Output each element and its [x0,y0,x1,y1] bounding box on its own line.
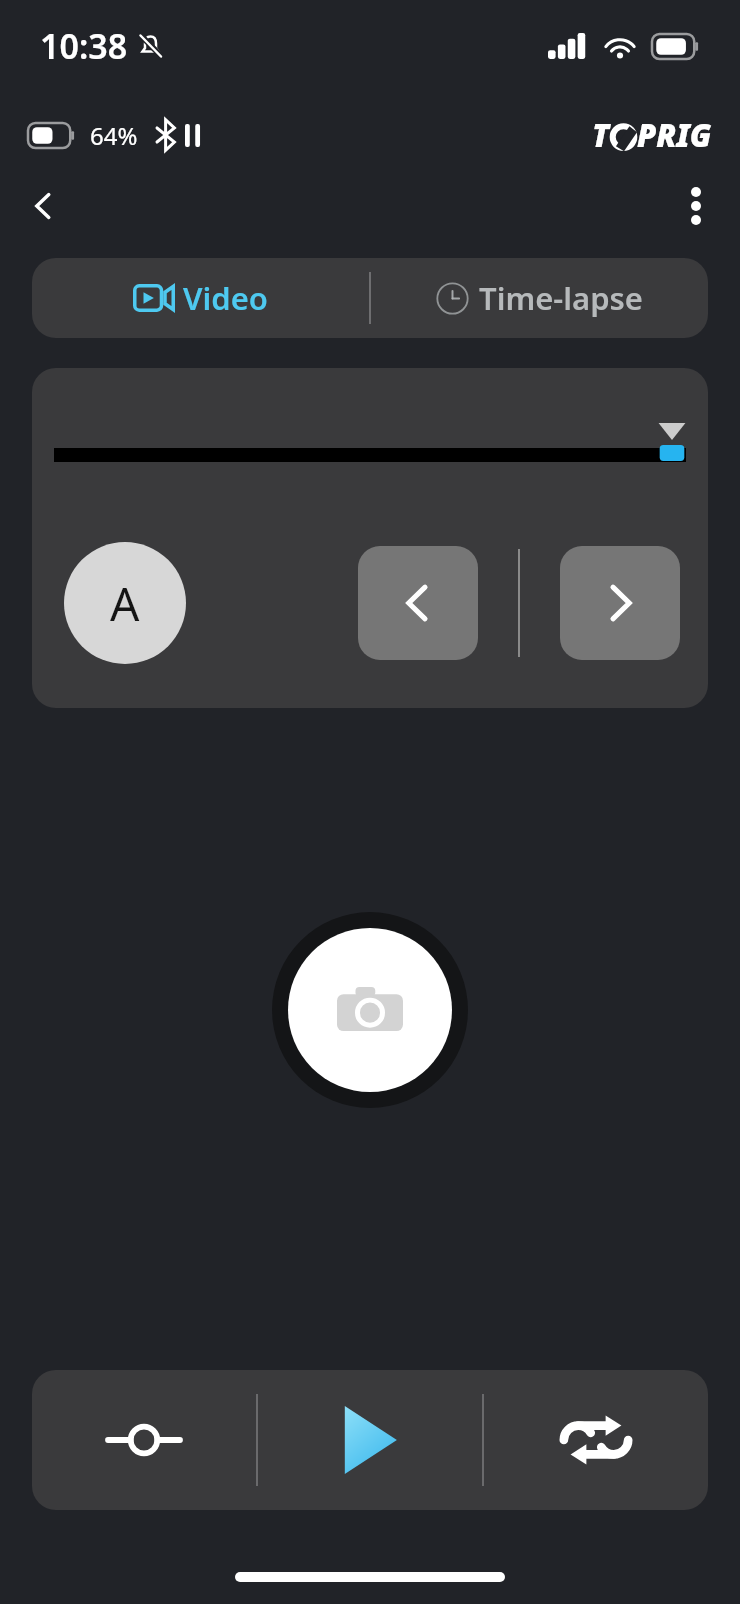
button[interactable]: A [64,542,186,664]
button[interactable]: More options [666,176,726,236]
staticText: 64% [90,119,138,152]
staticText: Video [183,277,269,319]
button[interactable]: Previous [358,546,478,660]
button[interactable]: Play [258,1370,482,1510]
button[interactable]: Next [560,546,680,660]
staticText: A [110,572,140,635]
button[interactable]: Back [14,176,74,236]
button[interactable]: Loop [484,1370,708,1510]
button[interactable]: Keyframe [32,1370,256,1510]
staticText: Time-lapse [479,277,643,319]
button[interactable]: Capture [272,912,468,1108]
button[interactable]: Zoom slider [54,448,686,462]
staticText: T [592,114,610,156]
button[interactable]: Time-lapse [371,258,708,338]
button[interactable]: Video [32,258,369,338]
staticText: PRIG [637,114,712,156]
staticText: 10:38 [40,23,128,69]
